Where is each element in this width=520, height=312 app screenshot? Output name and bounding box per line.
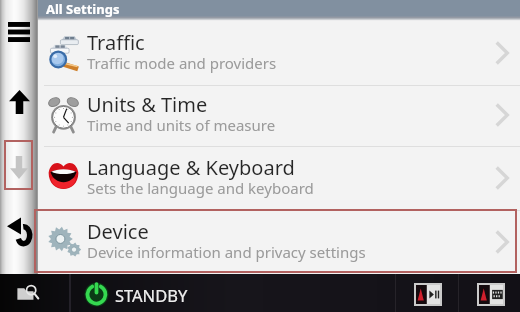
button[interactable]: Device bbox=[38, 211, 520, 272]
staticText: Traffic bbox=[87, 29, 145, 56]
button[interactable]: Units & Time bbox=[38, 84, 520, 145]
button[interactable]: Traffic bbox=[38, 20, 520, 85]
staticText: Device information and privacy settings bbox=[87, 242, 366, 262]
button[interactable]: Browse bbox=[0, 274, 69, 312]
staticText: Sets the language and keyboard bbox=[87, 178, 314, 198]
button[interactable]: Scroll down bbox=[4, 140, 33, 190]
staticText: Units & Time bbox=[87, 91, 208, 118]
button[interactable]: Device selected bbox=[34, 209, 517, 273]
button[interactable]: Scroll up bbox=[9, 90, 30, 114]
staticText: Language & Keyboard bbox=[87, 154, 295, 181]
button[interactable]: Language & Keyboard bbox=[38, 147, 520, 208]
staticText: Traffic mode and providers bbox=[87, 53, 277, 73]
staticText: All Settings bbox=[46, 0, 120, 18]
staticText: Time and units of measure bbox=[87, 115, 276, 135]
staticText: STANDBY bbox=[115, 284, 188, 306]
button[interactable]: STANDBY bbox=[84, 274, 188, 312]
staticText: Device bbox=[87, 218, 149, 245]
button[interactable]: Media player bbox=[396, 274, 458, 312]
button[interactable]: Menu bbox=[8, 22, 30, 42]
button[interactable]: Back bbox=[7, 216, 32, 247]
button[interactable]: Keyboard bbox=[459, 274, 520, 312]
